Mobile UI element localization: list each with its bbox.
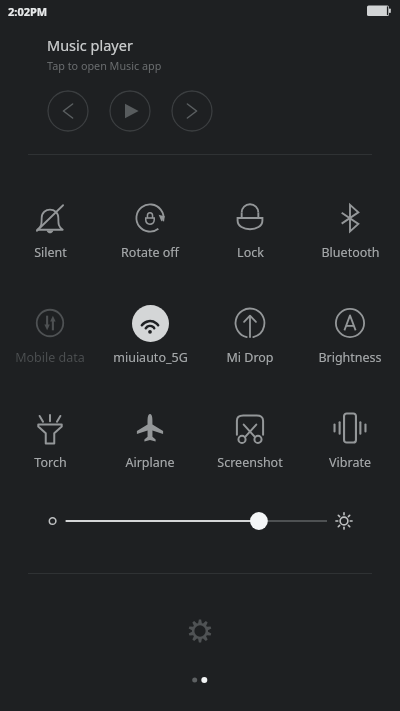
button[interactable]: Airplane [101,406,199,470]
staticText: Mi Drop [226,349,274,366]
staticText: miuiauto_5G [113,349,188,366]
staticText: Airplane [125,454,175,471]
staticText: Music player [47,35,133,55]
button[interactable]: Previous [47,90,89,132]
button[interactable]: Mobile data [1,301,99,365]
button[interactable]: Play [109,90,151,132]
staticText: Screenshot [217,454,283,471]
button[interactable]: Silent [1,196,99,260]
button[interactable]: Rotate off [101,196,199,260]
staticText: Vibrate [329,454,371,471]
button[interactable]: Bluetooth [301,196,399,260]
button[interactable]: Vibrate [301,406,399,470]
button[interactable]: Next [171,90,213,132]
staticText: Bluetooth [321,244,380,261]
button[interactable]: Mi Drop [201,301,299,365]
button[interactable]: Brightness slider [36,503,364,539]
button[interactable]: Brightness [301,301,399,365]
staticText: Rotate off [121,244,179,261]
staticText: Silent [34,244,67,261]
staticText: Lock [237,244,264,261]
button[interactable]: Lock [201,196,299,260]
staticText: 2:02PM [8,4,48,19]
button[interactable]: Screenshot [201,406,299,470]
button[interactable]: miuiauto_5G [101,301,199,365]
staticText: Brightness [318,349,382,366]
button[interactable]: Music player [28,30,372,80]
button[interactable]: Torch [1,406,99,470]
staticText: Torch [34,454,67,471]
button[interactable]: Settings [178,609,222,653]
staticText: Tap to open Music app [47,58,162,73]
staticText: Mobile data [15,349,85,366]
